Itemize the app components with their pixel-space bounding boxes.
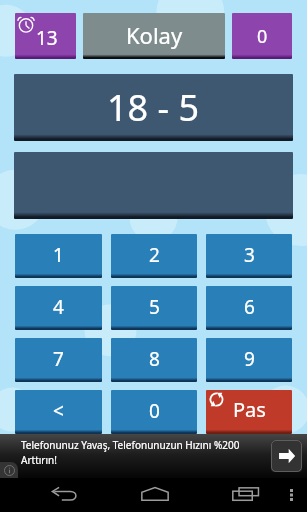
staticText: Kolay	[126, 20, 183, 50]
staticText: 8	[149, 346, 160, 372]
staticText: 3	[244, 242, 255, 268]
button[interactable]: Back	[19, 478, 109, 512]
staticText: Pas	[233, 396, 266, 423]
staticText: 13	[36, 25, 58, 51]
button[interactable]: 0	[232, 13, 292, 59]
button[interactable]: 1	[15, 234, 102, 278]
button[interactable]: 13	[15, 13, 76, 59]
staticText: 1	[53, 242, 64, 268]
button[interactable]: <	[15, 390, 102, 434]
button[interactable]: 4	[15, 286, 102, 330]
staticText: 7	[53, 346, 64, 372]
staticText: 0	[257, 24, 268, 49]
button[interactable]: 3	[206, 234, 292, 278]
staticText: <	[53, 398, 64, 424]
button[interactable]: Ad info	[0, 462, 18, 478]
button[interactable]: Open ad	[271, 440, 302, 472]
button[interactable]: 6	[206, 286, 292, 330]
button[interactable]: 9	[206, 338, 292, 382]
button[interactable]: 5	[111, 286, 197, 330]
staticText: Telefonunuz Yavaş, Telefonunuzun Hızını …	[21, 438, 240, 467]
staticText: 9	[244, 346, 255, 372]
button[interactable]: Recents	[200, 477, 290, 511]
button[interactable]: 8	[111, 338, 197, 382]
staticText: 6	[244, 294, 255, 320]
button[interactable]: 7	[15, 338, 102, 382]
button[interactable]: 0	[111, 390, 197, 434]
button[interactable]: Home	[110, 477, 200, 511]
button[interactable]: Kolay	[83, 13, 225, 59]
button[interactable]: Pas	[206, 390, 292, 434]
staticText: 0	[149, 398, 160, 424]
button[interactable]: Menu	[277, 478, 307, 512]
staticText: 4	[53, 294, 64, 320]
staticText: 18 - 5	[107, 83, 200, 132]
button[interactable]: 2	[111, 234, 197, 278]
staticText: 2	[149, 242, 160, 268]
staticText: 5	[149, 294, 160, 320]
